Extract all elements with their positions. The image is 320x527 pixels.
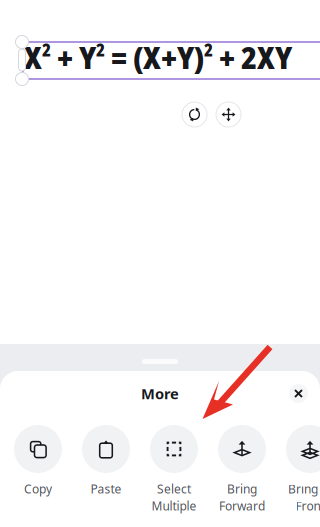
button[interactable]: Rotate (182, 102, 207, 127)
staticText: Front (295, 498, 320, 514)
button[interactable]: Copy (4, 425, 72, 511)
button[interactable]: Paste (72, 425, 140, 511)
button[interactable]: Bring (208, 425, 276, 511)
staticText: + Y (51, 36, 96, 78)
button[interactable]: Close (289, 384, 308, 403)
staticText: Select (157, 481, 191, 497)
staticText: + 2XY (213, 36, 292, 78)
staticText: Multiple (151, 498, 196, 514)
button[interactable]: Select (140, 425, 208, 511)
staticText: 2 (204, 38, 213, 62)
staticText: Bring to (288, 481, 320, 497)
staticText: 2 (96, 38, 105, 62)
staticText: Bring (227, 481, 257, 497)
staticText: Paste (90, 481, 121, 497)
staticText: More (141, 384, 179, 403)
button[interactable]: Move (216, 102, 241, 127)
button[interactable]: Bring to (276, 425, 320, 511)
staticText: = (X+Y) (105, 36, 204, 78)
staticText: 2 (42, 38, 51, 62)
staticText: Forward (219, 498, 265, 514)
staticText: Copy (24, 481, 52, 497)
staticText: X (24, 36, 42, 78)
